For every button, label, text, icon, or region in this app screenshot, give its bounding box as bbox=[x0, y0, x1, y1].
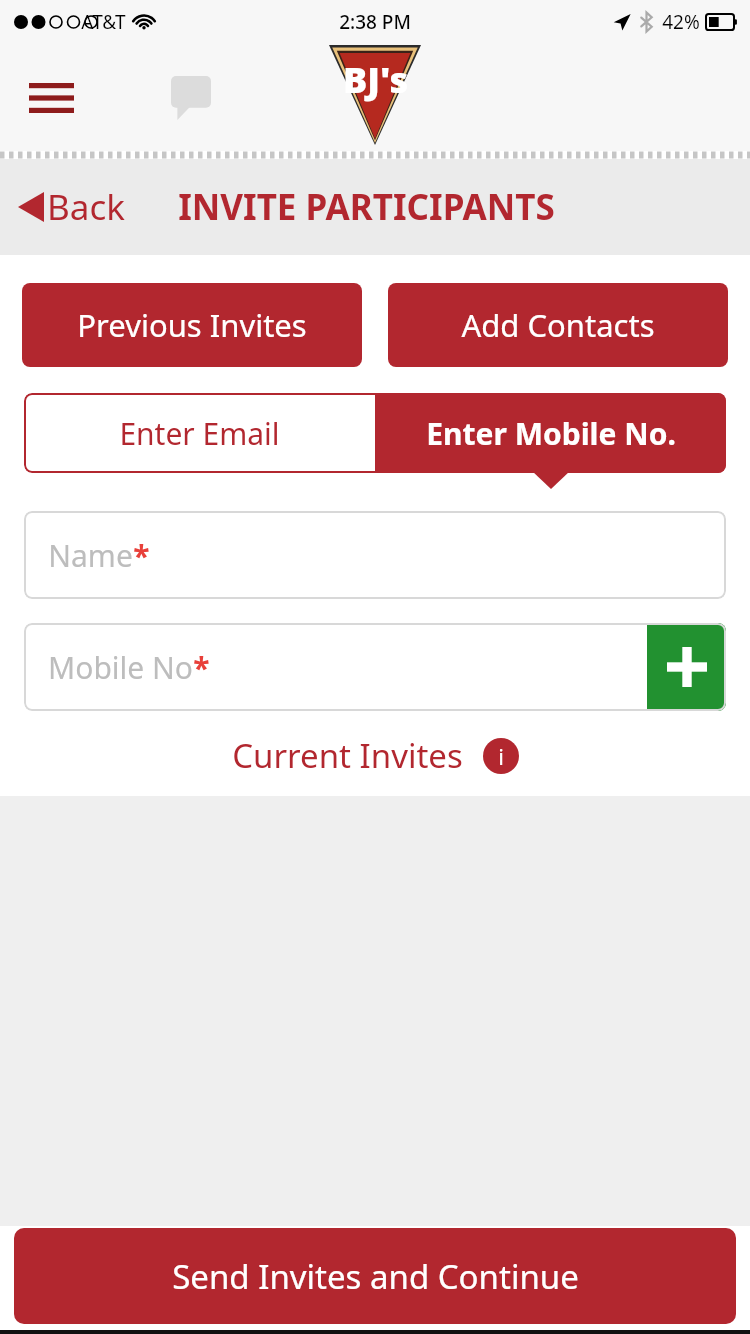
button[interactable]: Add Contacts bbox=[388, 283, 728, 367]
staticText: Name bbox=[48, 535, 133, 576]
button[interactable]: BJ's Home bbox=[329, 45, 421, 145]
button[interactable]: Enter Mobile No. bbox=[375, 393, 726, 473]
button[interactable]: Name bbox=[24, 511, 726, 599]
staticText: Add Contacts bbox=[461, 304, 655, 346]
button[interactable]: Messages bbox=[160, 69, 222, 127]
staticText: i bbox=[498, 741, 504, 771]
staticText: Previous Invites bbox=[77, 304, 307, 346]
button[interactable]: Menu bbox=[20, 71, 82, 125]
staticText: 2:38 PM bbox=[339, 9, 411, 35]
staticText: Current Invites bbox=[232, 733, 463, 778]
staticText: 42% bbox=[662, 9, 700, 35]
staticText: Send Invites and Continue bbox=[172, 1254, 579, 1299]
staticText: * bbox=[193, 647, 210, 688]
staticText: Enter Mobile No. bbox=[426, 413, 676, 454]
staticText: Enter Email bbox=[119, 413, 280, 454]
staticText: Mobile No bbox=[48, 647, 193, 688]
button[interactable]: Previous Invites bbox=[22, 283, 362, 367]
staticText: Back bbox=[47, 183, 125, 231]
staticText: BJ's bbox=[343, 55, 408, 104]
button[interactable]: Send Invites and Continue bbox=[14, 1228, 736, 1324]
staticText: INVITE PARTICIPANTS bbox=[178, 183, 555, 231]
button[interactable]: Current Invites bbox=[0, 733, 750, 778]
button[interactable]: Back bbox=[18, 183, 125, 231]
staticText: AT&T bbox=[81, 9, 126, 35]
button[interactable]: Mobile No bbox=[48, 647, 210, 688]
button[interactable]: Add invite bbox=[647, 623, 726, 711]
button[interactable]: Enter Email bbox=[24, 393, 375, 473]
staticText: * bbox=[133, 535, 150, 576]
